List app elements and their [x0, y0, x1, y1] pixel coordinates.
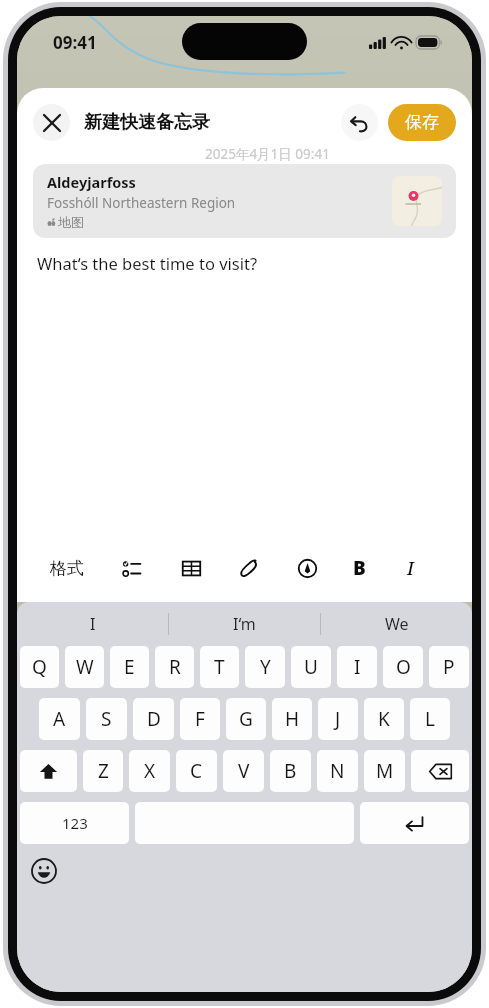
- staticText: G: [239, 706, 253, 732]
- button[interactable]: Emoji: [31, 858, 57, 884]
- staticText: X: [144, 758, 156, 784]
- button[interactable]: X: [129, 750, 170, 792]
- button[interactable]: P: [429, 646, 469, 688]
- button[interactable]: C: [176, 750, 217, 792]
- button[interactable]: A: [39, 698, 80, 740]
- button[interactable]: Table: [162, 543, 220, 593]
- staticText: M: [376, 758, 394, 784]
- button[interactable]: 123: [20, 802, 129, 844]
- staticText: H: [285, 706, 300, 732]
- staticText: 2025年4月1日 09:41: [205, 145, 330, 163]
- button[interactable]: We: [321, 602, 472, 646]
- button[interactable]: W: [65, 646, 104, 688]
- staticText: C: [190, 758, 203, 784]
- staticText: B: [284, 758, 297, 784]
- staticText: W: [76, 654, 94, 680]
- staticText: 09:41: [53, 31, 97, 54]
- button[interactable]: Close: [33, 104, 70, 141]
- staticText: Q: [32, 654, 47, 680]
- button[interactable]: Undo: [341, 104, 378, 141]
- button[interactable]: Checklist: [104, 543, 162, 593]
- staticText: Y: [260, 654, 271, 680]
- staticText: E: [124, 654, 135, 680]
- staticText: 新建快速备忘录: [84, 111, 210, 134]
- button[interactable]: G: [226, 698, 266, 740]
- button[interactable]: I: [17, 602, 168, 646]
- staticText: N: [330, 758, 345, 784]
- button[interactable]: B: [270, 750, 311, 792]
- staticText: P: [443, 654, 455, 680]
- button[interactable]: E: [110, 646, 149, 688]
- staticText: A: [53, 706, 66, 732]
- button[interactable]: I: [390, 543, 430, 593]
- staticText: D: [147, 706, 161, 732]
- button[interactable]: S: [86, 698, 127, 740]
- button[interactable]: Attach: [220, 543, 278, 593]
- staticText: We: [385, 613, 409, 635]
- staticText: L: [425, 706, 435, 732]
- button[interactable]: U: [291, 646, 331, 688]
- button[interactable]: Markup: [278, 543, 336, 593]
- staticText: S: [101, 706, 112, 732]
- button[interactable]: 保存: [388, 104, 456, 141]
- staticText: 123: [62, 813, 88, 833]
- button[interactable]: K: [364, 698, 404, 740]
- staticText: I: [354, 654, 361, 680]
- staticText: Aldeyjarfoss: [47, 172, 136, 192]
- button[interactable]: V: [223, 750, 264, 792]
- button[interactable]: Q: [20, 646, 59, 688]
- button[interactable]: T: [200, 646, 239, 688]
- button[interactable]: Aldeyjarfoss: [33, 164, 456, 238]
- staticText: U: [304, 654, 318, 680]
- button[interactable]: J: [318, 698, 358, 740]
- button[interactable]: M: [364, 750, 405, 792]
- staticText: K: [378, 706, 390, 732]
- staticText: R: [169, 654, 181, 680]
- button[interactable]: Shift: [20, 750, 77, 792]
- button[interactable]: R: [155, 646, 194, 688]
- button[interactable]: Z: [83, 750, 123, 792]
- button[interactable]: Return: [360, 802, 469, 844]
- staticText: I‘m: [233, 613, 256, 635]
- button[interactable]: N: [317, 750, 358, 792]
- button[interactable]: Backspace: [411, 750, 469, 792]
- staticText: V: [238, 758, 250, 784]
- button[interactable]: D: [133, 698, 174, 740]
- button[interactable]: L: [410, 698, 450, 740]
- staticText: I: [90, 613, 96, 635]
- button[interactable]: B: [336, 543, 382, 593]
- staticText: Z: [98, 758, 109, 784]
- staticText: 格式: [50, 558, 84, 579]
- staticText: J: [335, 706, 341, 732]
- staticText: F: [195, 706, 205, 732]
- button[interactable]: H: [272, 698, 312, 740]
- button[interactable]: I: [337, 646, 377, 688]
- staticText: B: [353, 555, 366, 581]
- button[interactable]: O: [383, 646, 423, 688]
- staticText: T: [214, 654, 225, 680]
- staticText: I: [407, 556, 414, 581]
- button[interactable]: Y: [245, 646, 285, 688]
- staticText: 保存: [405, 112, 439, 133]
- button[interactable]: 格式: [30, 543, 104, 593]
- button[interactable]: I‘m: [169, 602, 320, 646]
- staticText: What‘s the best time to visit?: [37, 252, 258, 274]
- staticText: O: [396, 654, 411, 680]
- staticText: Fosshóll Northeastern Region: [47, 194, 236, 212]
- staticText: 地图: [58, 214, 84, 230]
- button[interactable]: F: [180, 698, 220, 740]
